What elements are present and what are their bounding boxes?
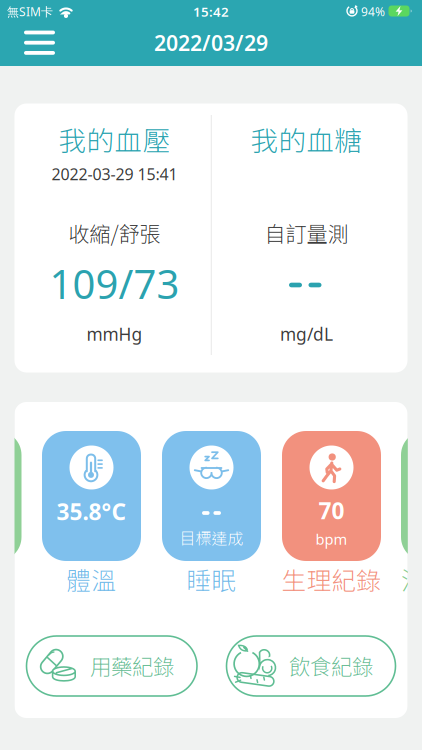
staticText: 目標達成 <box>179 526 243 549</box>
staticText: 70 <box>318 495 344 525</box>
button[interactable]: 用藥紀錄 <box>26 636 197 696</box>
staticText: 生理紀錄 <box>281 561 381 597</box>
staticText: 體溫 <box>66 561 116 597</box>
button[interactable]: 35.8°C <box>42 431 141 595</box>
staticText: 用藥紀錄 <box>90 650 174 681</box>
button[interactable]: 70 <box>282 431 381 595</box>
button[interactable]: 我的血壓 <box>14 103 211 372</box>
staticText: 睡眠 <box>186 561 236 597</box>
staticText: 109/73 <box>49 257 179 310</box>
button[interactable]: 我的血糖 <box>211 103 407 372</box>
staticText: 我的血壓 <box>58 119 170 159</box>
staticText: 35.8°C <box>56 496 126 526</box>
staticText: 2022-03-29 15:41 <box>51 163 177 185</box>
staticText: 消耗熱量 <box>401 561 422 597</box>
staticText: 飲食紀錄 <box>289 650 373 681</box>
staticText: bpm <box>315 529 347 549</box>
staticText: mmHg <box>86 322 142 345</box>
staticText: 94% <box>361 3 385 19</box>
staticText: 2022/03/29 <box>154 28 268 57</box>
button[interactable]: 飲食紀錄 <box>226 636 395 696</box>
staticText: 15:42 <box>193 3 229 20</box>
staticText: 收縮/舒張 <box>68 217 160 248</box>
button[interactable]: Menu <box>17 25 61 61</box>
button[interactable]: 目標達成 <box>162 431 261 595</box>
staticText: 無SIM卡 <box>7 3 53 19</box>
staticText: mg/dL <box>280 322 333 345</box>
staticText: 我的血糖 <box>250 119 362 159</box>
staticText: 自訂量測 <box>264 217 348 248</box>
